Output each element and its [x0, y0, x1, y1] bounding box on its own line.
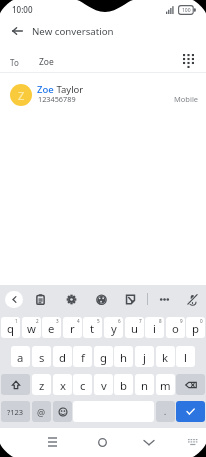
button[interactable]: r [63, 317, 82, 338]
button[interactable]: i [145, 317, 164, 338]
staticText: q [7, 321, 14, 336]
button[interactable]: e [42, 317, 61, 338]
staticText: p [192, 321, 199, 336]
button[interactable]: Clipboard [34, 288, 46, 311]
staticText: 9 [180, 318, 183, 324]
staticText: c [80, 378, 86, 393]
staticText: b [120, 378, 127, 393]
staticText: 2 [36, 318, 39, 324]
button[interactable]: Emoji [53, 401, 72, 422]
button[interactable]: c [73, 374, 92, 395]
button[interactable]: o [166, 317, 185, 338]
button[interactable]: n [135, 374, 154, 395]
button[interactable]: q [1, 317, 20, 338]
button[interactable]: Home [91, 431, 113, 453]
button[interactable]: m [156, 374, 175, 395]
button[interactable]: Send [176, 401, 205, 422]
staticText: Z [18, 88, 25, 103]
staticText: . [164, 406, 167, 417]
button[interactable]: s [32, 346, 51, 367]
staticText: k [162, 350, 169, 365]
staticText: x [60, 378, 66, 393]
staticText: 123456789 [38, 94, 76, 104]
staticText: l [184, 350, 187, 365]
button[interactable]: u [125, 317, 144, 338]
staticText: a [17, 350, 24, 365]
button[interactable]: h [114, 346, 133, 367]
button[interactable]: @ [32, 401, 51, 422]
staticText: y [111, 321, 117, 336]
staticText: m [160, 378, 171, 393]
staticText: g [100, 350, 107, 365]
staticText: New conversation [32, 25, 114, 38]
staticText: Zoe [37, 83, 54, 96]
staticText: i [153, 321, 156, 336]
staticText: 1 [15, 318, 18, 324]
staticText: To [10, 57, 19, 68]
staticText: Taylor [54, 83, 84, 96]
button[interactable]: a [11, 346, 30, 367]
button[interactable]: Voice input off [186, 288, 198, 311]
button[interactable]: ?123 [1, 401, 30, 422]
staticText: w [27, 321, 36, 336]
staticText: 5 [97, 318, 100, 324]
staticText: 3 [56, 318, 59, 324]
button[interactable]: w [22, 317, 41, 338]
staticText: u [131, 321, 138, 336]
staticText: j [143, 350, 146, 365]
button[interactable]: Z [0, 76, 206, 114]
staticText: v [101, 378, 107, 393]
button[interactable]: Back [2, 16, 32, 46]
staticText: z [39, 378, 45, 393]
button[interactable]: Hide keyboard [182, 431, 204, 453]
button[interactable]: Close toolbar [5, 291, 23, 308]
staticText: h [120, 350, 127, 365]
button[interactable]: Back [138, 431, 160, 453]
staticText: n [141, 378, 148, 393]
staticText: ?123 [7, 407, 24, 417]
staticText: d [59, 350, 66, 365]
button[interactable]: b [114, 374, 133, 395]
button[interactable]: Stickers [124, 288, 136, 311]
button[interactable]: v [94, 374, 113, 395]
button[interactable]: z [32, 374, 51, 395]
staticText: 4 [77, 318, 80, 324]
button[interactable]: Settings [65, 288, 77, 311]
staticText: s [39, 350, 45, 365]
button[interactable]: x [53, 374, 72, 395]
staticText: 6 [118, 318, 121, 324]
button[interactable]: y [104, 317, 123, 338]
button[interactable]: More options [158, 288, 170, 311]
staticText: Mobile [174, 94, 199, 104]
button[interactable]: k [156, 346, 175, 367]
staticText: r [70, 321, 75, 336]
staticText: @ [37, 406, 46, 418]
staticText: 10:00 [12, 4, 33, 15]
staticText: f [81, 350, 85, 365]
button[interactable]: g [94, 346, 113, 367]
button[interactable]: t [83, 317, 102, 338]
staticText: 8 [159, 318, 162, 324]
staticText: 100 [182, 7, 191, 14]
button[interactable]: p [186, 317, 205, 338]
button[interactable]: Dialpad [175, 48, 201, 74]
staticText: 7 [139, 318, 142, 324]
button[interactable]: l [176, 346, 195, 367]
button[interactable]: d [53, 346, 72, 367]
button[interactable]: f [73, 346, 92, 367]
button[interactable]: . [156, 401, 175, 422]
button[interactable]: Themes [95, 288, 107, 311]
button[interactable]: Shift [1, 374, 30, 395]
staticText: o [172, 321, 179, 336]
staticText: t [90, 321, 95, 336]
staticText: e [48, 321, 55, 336]
staticText: 0 [200, 318, 203, 324]
staticText: Zoe [39, 56, 54, 68]
button[interactable]: Recent apps [41, 431, 63, 453]
button[interactable]: Backspace [176, 374, 205, 395]
button[interactable]: j [135, 346, 154, 367]
